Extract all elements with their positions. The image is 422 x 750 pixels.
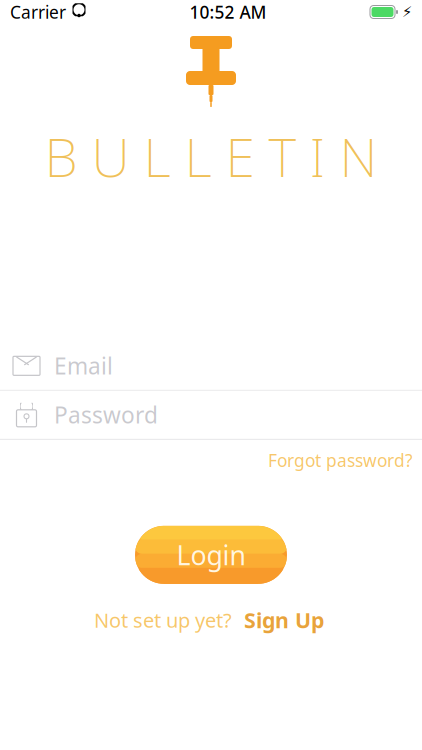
staticText: Email bbox=[54, 351, 113, 381]
staticText: Forgot password? bbox=[268, 449, 413, 472]
staticText: 10:52 AM bbox=[189, 0, 266, 23]
button[interactable]: Password bbox=[0, 391, 422, 439]
staticText: Sign Up bbox=[244, 606, 324, 634]
button[interactable]: Forgot password? bbox=[259, 443, 422, 478]
staticText: B U L L E T I N bbox=[44, 121, 377, 192]
button[interactable]: Sign Up bbox=[240, 602, 328, 638]
staticText: Password bbox=[54, 400, 158, 430]
staticText: Login bbox=[176, 537, 245, 572]
button[interactable]: Login bbox=[135, 526, 287, 584]
button[interactable]: ✉ bbox=[0, 342, 422, 390]
staticText: ⚡︎ bbox=[402, 4, 412, 20]
staticText: ✉ bbox=[18, 354, 35, 377]
staticText: Carrier bbox=[10, 0, 66, 23]
staticText: Not set up yet? bbox=[94, 607, 232, 633]
